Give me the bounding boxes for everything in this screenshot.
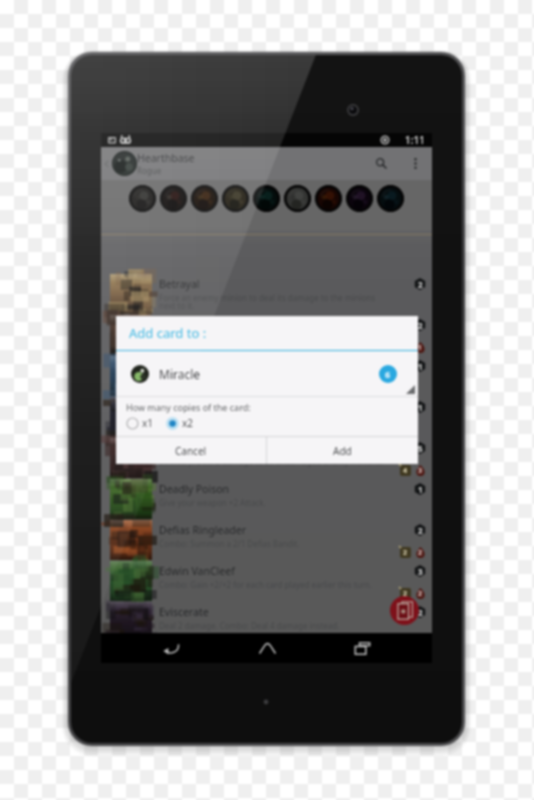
- button[interactable]: Eviscerate: [101, 601, 432, 642]
- button[interactable]: Class filter: [253, 185, 280, 212]
- button[interactable]: x2: [166, 416, 194, 430]
- button[interactable]: Conceal: [101, 396, 432, 437]
- button[interactable]: Add: [267, 437, 418, 464]
- staticText: Add card to :: [129, 324, 207, 342]
- staticText: Edwin VanCleef: [159, 564, 235, 578]
- staticText: How many copies of the card:: [126, 401, 251, 413]
- staticText: Defias Ringleader: [159, 523, 246, 537]
- staticText: Destroy your weapon and deal its damage …: [159, 333, 386, 352]
- staticText: Rogue: [137, 165, 162, 176]
- staticText: 3: [418, 566, 423, 577]
- staticText: 1: [403, 343, 408, 353]
- button[interactable]: Edwin VanCleef: [101, 560, 432, 601]
- staticText: 2: [403, 589, 408, 599]
- button[interactable]: Cancel: [116, 437, 266, 464]
- staticText: 2: [418, 320, 423, 331]
- staticText: 1: [418, 402, 423, 413]
- staticText: Cancel: [175, 444, 207, 458]
- button[interactable]: Class filter: [346, 185, 373, 212]
- staticText: Blade Flurry: [159, 318, 219, 332]
- staticText: Betrayal: [159, 277, 200, 291]
- staticText: 2: [418, 607, 423, 618]
- staticText: 6: [385, 368, 391, 380]
- staticText: 1:11: [405, 133, 425, 147]
- staticText: 5: [418, 443, 423, 454]
- staticText: 2: [403, 548, 408, 558]
- staticText: Cold Blood: [159, 359, 213, 373]
- button[interactable]: Class filter: [129, 185, 156, 212]
- button[interactable]: Class filter: [315, 185, 342, 212]
- staticText: Give your minions Stealth until your nex…: [159, 415, 333, 426]
- staticText: 2: [418, 525, 423, 536]
- staticText: Conceal: [159, 400, 199, 414]
- button[interactable]: Navigate up: [101, 147, 111, 180]
- staticText: Eviscerate: [159, 605, 209, 619]
- button[interactable]: Class filter: [284, 185, 311, 212]
- staticText: Hearthbase: [137, 151, 195, 165]
- button[interactable]: Miracle: [116, 351, 418, 396]
- staticText: Force an enemy minion to deal its damage…: [159, 292, 386, 311]
- button[interactable]: Class filter: [160, 185, 187, 212]
- staticText: 2: [418, 589, 423, 599]
- staticText: 3: [418, 466, 423, 476]
- button[interactable]: Class filter: [191, 185, 218, 212]
- button[interactable]: More options: [399, 147, 432, 180]
- button[interactable]: Home: [242, 633, 292, 663]
- button[interactable]: Class filter: [377, 185, 404, 212]
- staticText: x2: [182, 416, 194, 430]
- button[interactable]: Recent apps: [337, 633, 387, 663]
- button[interactable]: Cold Blood: [101, 355, 432, 396]
- staticText: 2: [418, 548, 423, 558]
- staticText: Miracle: [159, 366, 201, 382]
- staticText: 2: [418, 279, 423, 290]
- button[interactable]: Blade Flurry: [101, 314, 432, 355]
- staticText: 1: [418, 484, 423, 495]
- button[interactable]: Back: [146, 633, 196, 663]
- staticText: 1: [418, 343, 423, 353]
- staticText: Add: [333, 444, 352, 458]
- staticText: Give a minion +2 Attack. Combo: +4 Attac…: [159, 374, 350, 385]
- button[interactable]: Deadly Poison: [101, 478, 432, 519]
- button[interactable]: Add card: [390, 596, 419, 625]
- staticText: Dark Iron Skulker: [159, 441, 245, 455]
- button[interactable]: x1: [126, 416, 154, 430]
- staticText: 4: [403, 466, 408, 476]
- staticText: Deadly Poison: [159, 482, 230, 496]
- button[interactable]: Betrayal: [101, 273, 432, 314]
- staticText: x1: [142, 416, 154, 430]
- button[interactable]: Search: [363, 147, 399, 180]
- staticText: Battlecry: Deal 2 damage to all undamage…: [159, 456, 384, 467]
- staticText: 1: [418, 361, 423, 372]
- button[interactable]: Class filter: [222, 185, 249, 212]
- button[interactable]: Dark Iron Skulker: [101, 437, 432, 478]
- button[interactable]: Defias Ringleader: [101, 519, 432, 560]
